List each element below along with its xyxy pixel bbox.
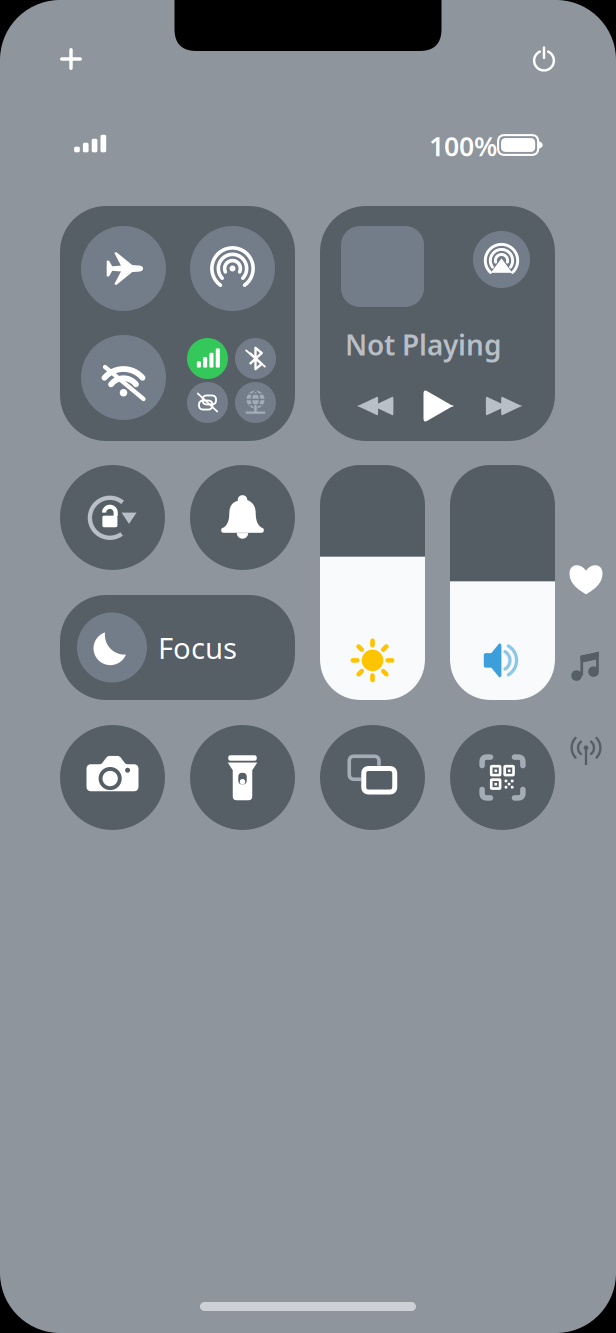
button[interactable]: Bluetooth bbox=[235, 338, 276, 379]
button[interactable]: AirPlay bbox=[473, 231, 530, 288]
button[interactable]: VPN bbox=[235, 382, 276, 423]
button[interactable]: Power bbox=[516, 31, 572, 87]
button[interactable]: Focus bbox=[60, 595, 295, 700]
button[interactable]: Volume bbox=[450, 465, 555, 700]
button[interactable]: Rotation Lock bbox=[60, 465, 165, 570]
staticText: Not Playing bbox=[345, 326, 502, 363]
button[interactable]: Personal Hotspot bbox=[187, 382, 228, 423]
button[interactable]: Silent Mode bbox=[190, 465, 295, 570]
button[interactable]: Display Brightness bbox=[320, 465, 425, 700]
button[interactable]: Flashlight bbox=[190, 725, 295, 830]
button[interactable]: Wi-Fi bbox=[81, 335, 166, 420]
button[interactable]: Cellular Data bbox=[187, 338, 228, 379]
button[interactable]: Rewind bbox=[351, 383, 397, 429]
staticText: 100% bbox=[429, 128, 497, 164]
button[interactable]: AirDrop bbox=[190, 226, 275, 311]
staticText: Focus bbox=[158, 628, 237, 667]
button[interactable]: Code Scanner bbox=[450, 725, 555, 830]
button[interactable]: Airplane Mode bbox=[81, 226, 166, 311]
button[interactable]: Screen Mirroring bbox=[320, 725, 425, 830]
button[interactable]: Add a Control bbox=[43, 31, 99, 87]
button[interactable]: Play bbox=[416, 383, 462, 429]
button[interactable]: Fast Forward bbox=[481, 383, 527, 429]
button[interactable]: Camera bbox=[60, 725, 165, 830]
